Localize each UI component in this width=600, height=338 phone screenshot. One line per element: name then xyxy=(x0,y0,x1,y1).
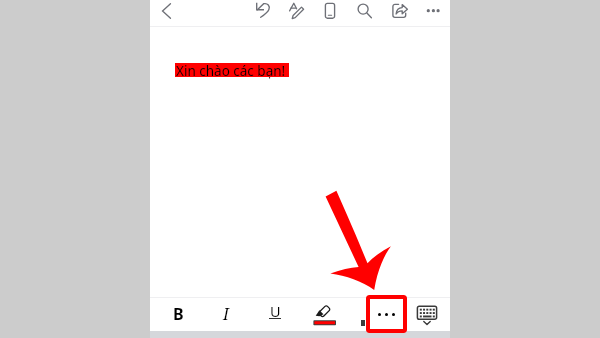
button[interactable]: More options xyxy=(417,0,447,27)
button[interactable]: U xyxy=(257,298,293,330)
button[interactable]: Share xyxy=(385,0,415,27)
staticText: U xyxy=(270,301,281,321)
staticText: Xin chào các bạn! xyxy=(176,62,286,80)
button[interactable]: Text style xyxy=(282,0,312,27)
button[interactable]: More text options xyxy=(366,295,407,333)
button[interactable]: Back xyxy=(153,0,180,27)
button[interactable]: Undo xyxy=(248,0,278,27)
button[interactable]: Device xyxy=(315,0,345,27)
button[interactable]: I xyxy=(208,298,244,330)
button[interactable]: Highlighter xyxy=(307,298,341,330)
staticText: I xyxy=(223,303,229,325)
button[interactable]: Keyboard xyxy=(410,298,444,330)
staticText: B xyxy=(173,303,184,325)
button[interactable]: B xyxy=(160,298,196,330)
button[interactable]: Search xyxy=(349,0,379,27)
